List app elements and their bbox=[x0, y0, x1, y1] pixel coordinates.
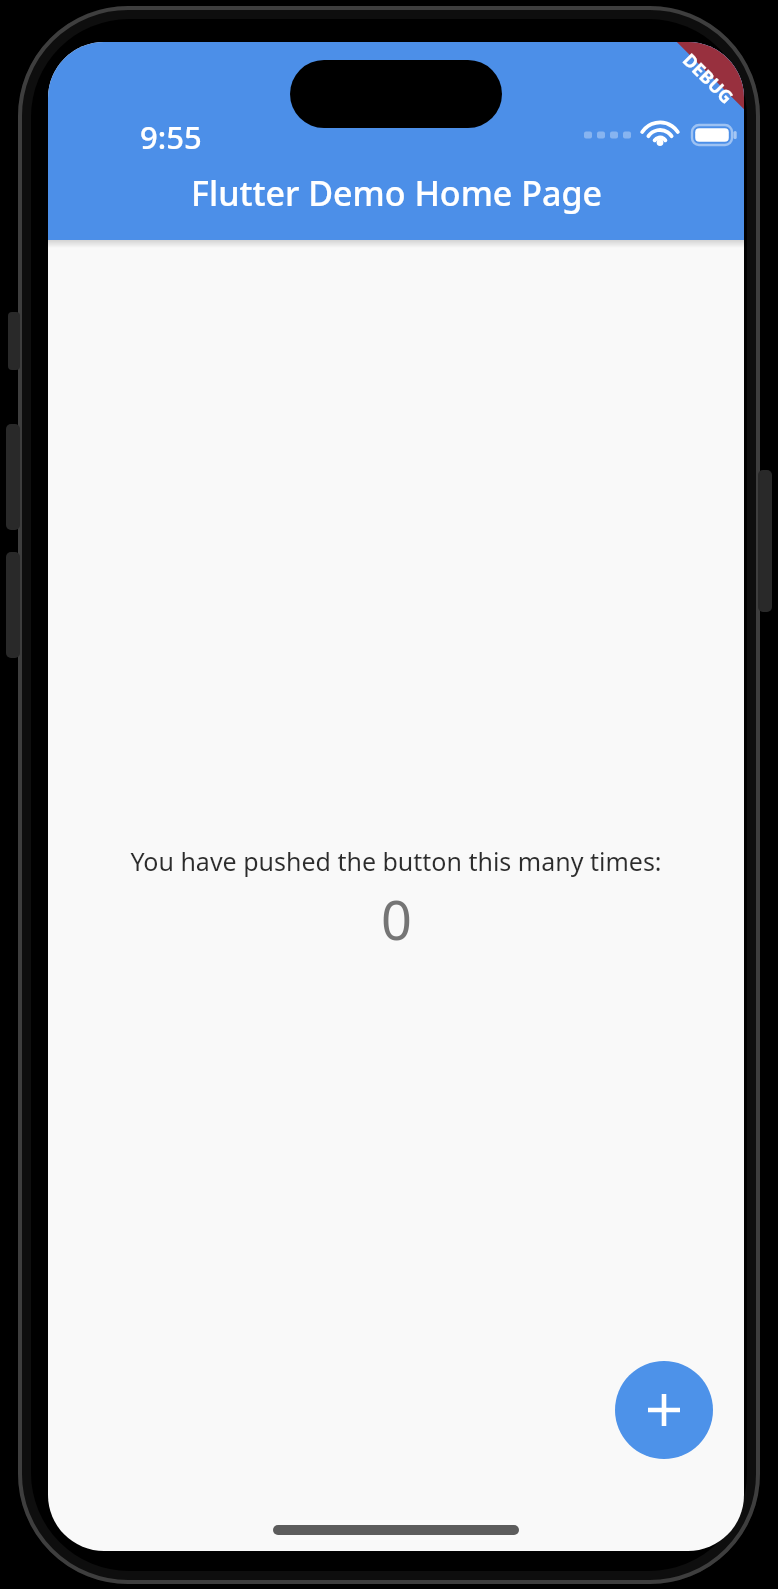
staticText: Flutter Demo Home Page bbox=[191, 170, 602, 216]
button[interactable]: Increment counter bbox=[615, 1361, 713, 1459]
staticText: 9:55 bbox=[140, 116, 202, 158]
staticText: DEBUG bbox=[677, 48, 739, 109]
staticText: You have pushed the button this many tim… bbox=[130, 844, 662, 878]
staticText: 0 bbox=[381, 882, 412, 956]
